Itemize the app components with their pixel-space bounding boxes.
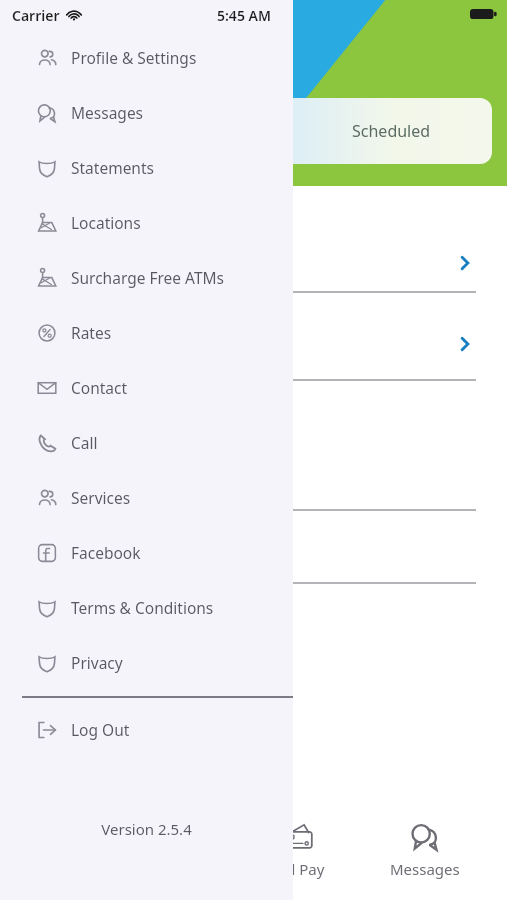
staticText: Contact: [71, 377, 128, 398]
staticText: Locations: [71, 212, 141, 233]
button[interactable]: Contact: [0, 360, 293, 415]
button[interactable]: Surcharge Free ATMs: [0, 250, 293, 305]
staticText: Terms & Conditions: [71, 597, 214, 618]
staticText: Version 2.5.4: [0, 819, 293, 839]
staticText: Bill Pay: [274, 859, 325, 879]
button[interactable]: Privacy: [0, 635, 293, 690]
button[interactable]: Bill Pay: [253, 815, 345, 885]
staticText: Carrier: [12, 6, 60, 25]
staticText: Surcharge Free ATMs: [71, 267, 225, 288]
button[interactable]: Statements: [0, 140, 293, 195]
staticText: Facebook: [71, 542, 141, 563]
button[interactable]: Facebook: [0, 525, 293, 580]
button[interactable]: Scheduled: [290, 98, 492, 164]
staticText: Services: [71, 487, 131, 508]
staticText: Rates: [71, 322, 112, 343]
button[interactable]: Open: [452, 250, 478, 276]
staticText: Profile & Settings: [71, 47, 197, 68]
staticText: Log Out: [71, 719, 130, 740]
button[interactable]: Locations: [0, 195, 293, 250]
button[interactable]: Profile & Settings: [0, 30, 293, 85]
staticText: Privacy: [71, 652, 123, 673]
staticText: Statements: [71, 157, 154, 178]
button[interactable]: Rates: [0, 305, 293, 360]
button[interactable]: Call: [0, 415, 293, 470]
staticText: Scheduled: [352, 120, 431, 142]
button[interactable]: Terms & Conditions: [0, 580, 293, 635]
staticText: Call: [71, 432, 98, 453]
staticText: 5:45 AM: [217, 6, 271, 25]
button[interactable]: Messages: [0, 85, 293, 140]
button[interactable]: Log Out: [0, 702, 293, 757]
button[interactable]: Services: [0, 470, 293, 525]
staticText: Messages: [71, 102, 144, 123]
other: Battery: [470, 6, 498, 22]
button[interactable]: Open: [452, 331, 478, 357]
staticText: Messages: [390, 859, 460, 879]
button[interactable]: Messages: [373, 815, 477, 885]
